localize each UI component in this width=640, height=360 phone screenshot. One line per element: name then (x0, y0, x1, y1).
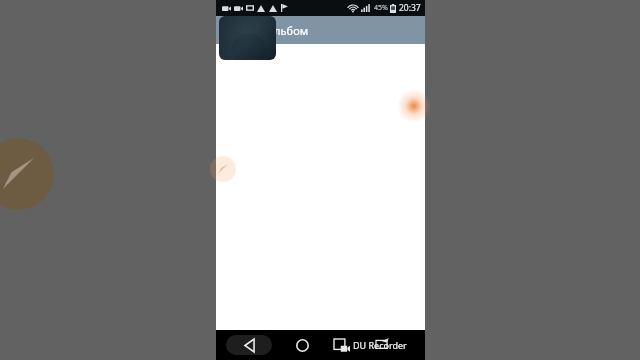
button[interactable]: Home (290, 333, 314, 357)
staticText: 45% (374, 3, 388, 13)
staticText: 20:37 (399, 2, 421, 14)
button[interactable]: Album thumbnail (219, 16, 276, 60)
staticText: DU Recorder (353, 339, 407, 351)
staticText: альбом (268, 23, 309, 38)
button[interactable]: Back (226, 335, 272, 355)
button[interactable]: DU Recorder (334, 332, 407, 358)
